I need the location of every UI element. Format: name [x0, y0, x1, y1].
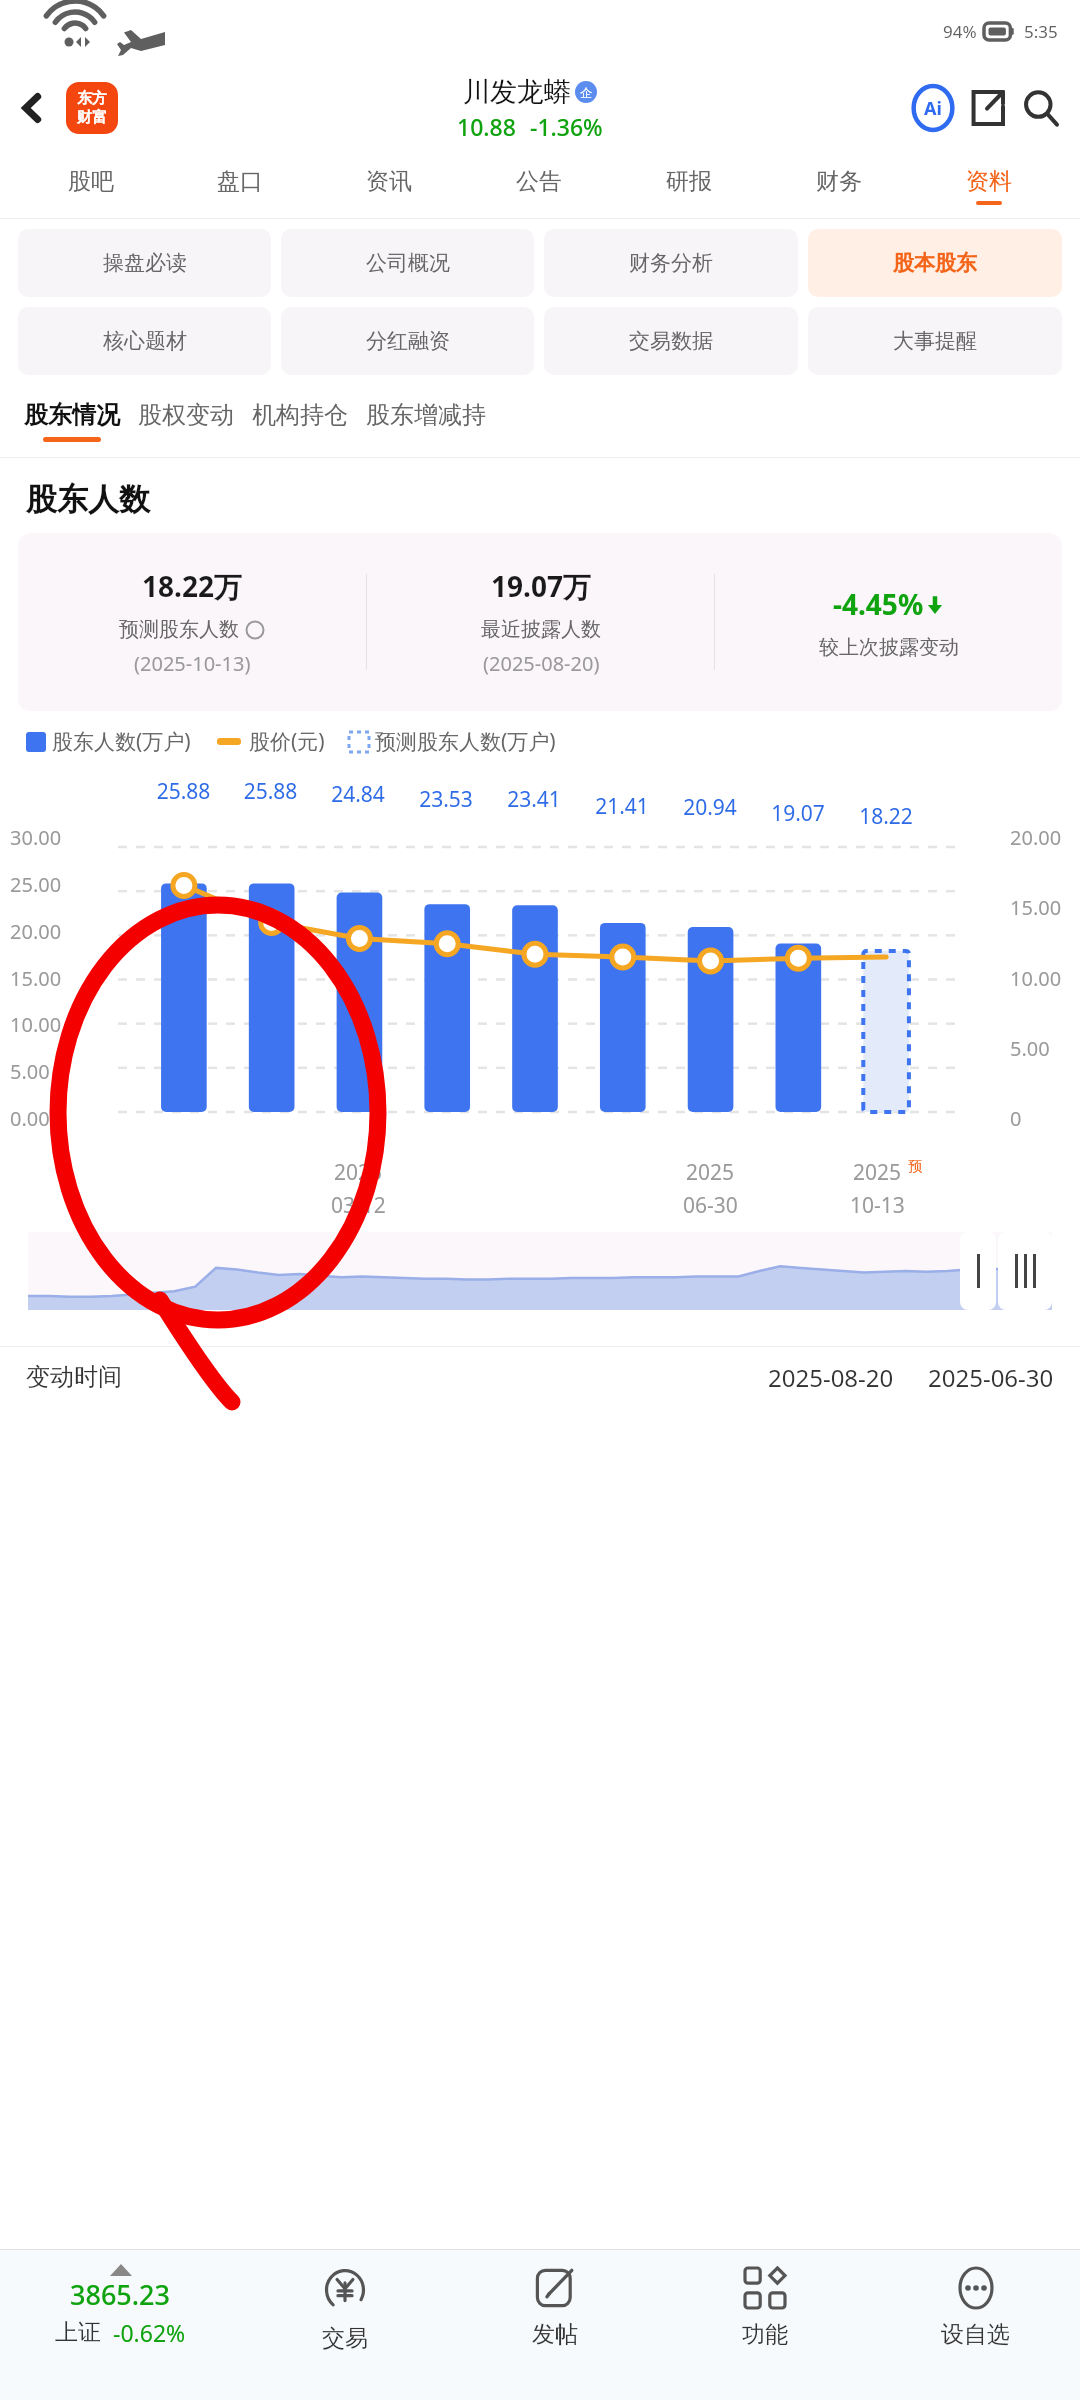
staticText: 21.41: [578, 792, 666, 821]
staticText: 5:35: [1024, 20, 1058, 43]
button[interactable]: 股本股东: [808, 229, 1062, 297]
button[interactable]: 股东增减持: [366, 385, 486, 457]
staticText: 23.53: [402, 785, 490, 814]
staticText: 03-12: [331, 1191, 386, 1220]
staticText: 15.00: [1010, 894, 1062, 921]
staticText: 预: [908, 1158, 922, 1176]
button[interactable]: 公告: [464, 154, 614, 218]
staticText: 19.07: [754, 799, 842, 828]
staticText: 财务: [816, 167, 862, 196]
staticText: 20.94: [666, 793, 754, 822]
staticText: 10-13: [850, 1191, 905, 1220]
staticText: 变动时间: [26, 1362, 122, 1392]
staticText: 股东增减持: [366, 400, 486, 430]
button[interactable]: 功能: [660, 2250, 870, 2400]
staticText: 东方: [77, 89, 107, 108]
staticText: 股东人数: [26, 480, 150, 519]
staticText: 10.00: [1010, 965, 1062, 992]
staticText: 盘口: [217, 167, 263, 196]
staticText: 股东情况: [24, 400, 120, 430]
button[interactable]: 大事提醒: [808, 307, 1062, 375]
button[interactable]: 交易: [240, 2250, 450, 2400]
button[interactable]: Back: [6, 81, 60, 135]
staticText: 18.22万: [142, 567, 242, 605]
staticText: 股吧: [68, 167, 114, 196]
staticText: 财富: [77, 108, 107, 127]
staticText: 3865.23: [70, 2276, 171, 2313]
staticText: 财务分析: [629, 250, 713, 276]
staticText: 最近披露人数: [481, 617, 601, 642]
staticText: 机构持仓: [252, 400, 348, 430]
button[interactable]: Search: [1014, 81, 1068, 135]
staticText: 25.88: [140, 777, 227, 806]
staticText: 94%: [943, 20, 977, 43]
button[interactable]: Share: [960, 81, 1014, 135]
staticText: 2025-06-30: [928, 1361, 1054, 1394]
staticText: (2025-10-13): [134, 650, 251, 677]
button[interactable]: [998, 1232, 1052, 1310]
staticText: 预测股东人数(万户): [375, 727, 556, 756]
staticText: 功能: [742, 2320, 788, 2349]
button[interactable]: 股吧: [16, 154, 165, 218]
staticText: 20.00: [10, 918, 62, 945]
button[interactable]: AI: [906, 81, 960, 135]
staticText: 大事提醒: [893, 328, 977, 354]
staticText: 股东人数(万户): [52, 727, 191, 756]
staticText: 研报: [666, 167, 712, 196]
button[interactable]: 财务分析: [544, 229, 798, 297]
staticText: 公司概况: [366, 250, 450, 276]
staticText: 公告: [516, 167, 562, 196]
staticText: 交易: [322, 2324, 368, 2353]
staticText: 企: [580, 85, 592, 100]
button[interactable]: 盘口: [165, 154, 314, 218]
staticText: 18.22: [842, 802, 930, 831]
button[interactable]: 机构持仓: [252, 385, 348, 457]
staticText: 2025: [853, 1158, 902, 1187]
button[interactable]: 操盘必读: [18, 229, 271, 297]
staticText: (2025-08-20): [483, 650, 600, 677]
staticText: 15.00: [10, 965, 62, 992]
staticText: 分红融资: [366, 328, 450, 354]
button[interactable]: 研报: [614, 154, 764, 218]
button[interactable]: [960, 1232, 996, 1310]
button[interactable]: 3865.23: [0, 2250, 240, 2400]
staticText: 较上次披露变动: [819, 635, 959, 660]
staticText: 交易数据: [629, 328, 713, 354]
button[interactable]: 资料: [914, 154, 1064, 218]
button[interactable]: 财务: [764, 154, 914, 218]
button[interactable]: 核心题材: [18, 307, 271, 375]
staticText: 23.41: [490, 785, 578, 814]
staticText: 30.00: [10, 824, 62, 851]
staticText: 25.00: [10, 871, 62, 898]
staticText: 发帖: [532, 2320, 578, 2349]
staticText: 预测股东人数: [119, 617, 239, 642]
staticText: 设自选: [941, 2320, 1010, 2349]
button[interactable]: 交易数据: [544, 307, 798, 375]
staticText: 资料: [966, 167, 1012, 196]
staticText: 资讯: [366, 167, 412, 196]
button[interactable]: East Money: [66, 82, 118, 134]
button[interactable]: 分红融资: [281, 307, 534, 375]
staticText: 06-30: [683, 1191, 738, 1220]
button[interactable]: 资讯: [314, 154, 464, 218]
staticText: 股本股东: [893, 250, 977, 276]
staticText: 25.88: [227, 777, 314, 806]
staticText: 24.84: [314, 780, 402, 809]
staticText: -1.36%: [530, 111, 603, 142]
staticText: 2025: [334, 1158, 383, 1187]
button[interactable]: 发帖: [450, 2250, 660, 2400]
button[interactable]: 股权变动: [138, 385, 234, 457]
staticText: 5.00: [1010, 1035, 1050, 1062]
staticText: 川发龙蟒: [463, 75, 571, 109]
staticText: 2025-08-20: [768, 1361, 894, 1394]
staticText: -0.62%: [113, 2317, 186, 2348]
staticText: 0.00: [10, 1105, 50, 1132]
staticText: 10.00: [10, 1011, 62, 1038]
button[interactable]: 公司概况: [281, 229, 534, 297]
staticText: 0: [1010, 1105, 1022, 1132]
button[interactable]: 设自选: [870, 2250, 1080, 2400]
staticText: 5.00: [10, 1058, 50, 1085]
button[interactable]: 股东情况: [24, 385, 120, 457]
staticText: 核心题材: [103, 328, 187, 354]
staticText: -4.45%: [833, 585, 924, 623]
